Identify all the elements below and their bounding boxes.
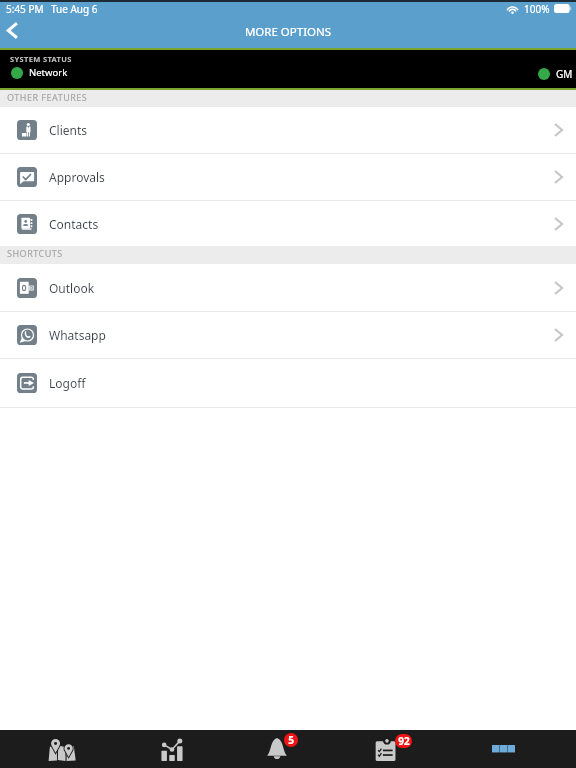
button[interactable]: More options — [461, 730, 576, 768]
button[interactable]: Whatsapp — [0, 312, 576, 358]
button[interactable]: Tasks — [346, 730, 461, 768]
button[interactable]: Outlook — [0, 264, 576, 311]
staticText: Approvals — [49, 169, 105, 185]
staticText: OTHER FEATURES — [7, 91, 88, 103]
staticText: SYSTEM STATUS — [10, 54, 72, 64]
button[interactable]: Map — [0, 730, 116, 768]
staticText: 5 — [288, 733, 294, 747]
button[interactable]: Back — [0, 16, 29, 44]
staticText: SHORTCUTS — [7, 247, 63, 259]
staticText: MORE OPTIONS — [0, 24, 576, 40]
staticText: Clients — [49, 122, 88, 138]
button[interactable]: Contacts — [0, 201, 576, 246]
button[interactable]: Logoff — [0, 359, 576, 407]
button[interactable]: Approvals — [0, 154, 576, 200]
staticText: 5:45 PM — [6, 2, 44, 16]
staticText: GM — [556, 67, 573, 81]
staticText: Tue Aug 6 — [51, 2, 98, 16]
staticText: 100% — [524, 2, 550, 16]
button[interactable]: Alerts — [231, 730, 346, 768]
button[interactable]: Reports — [116, 730, 231, 768]
staticText: Whatsapp — [49, 327, 106, 343]
button[interactable]: Clients — [0, 107, 576, 153]
staticText: Contacts — [49, 216, 99, 232]
staticText: 92 — [398, 734, 410, 748]
staticText: Outlook — [49, 280, 95, 296]
staticText: Network — [29, 66, 68, 79]
staticText: Logoff — [49, 375, 86, 391]
